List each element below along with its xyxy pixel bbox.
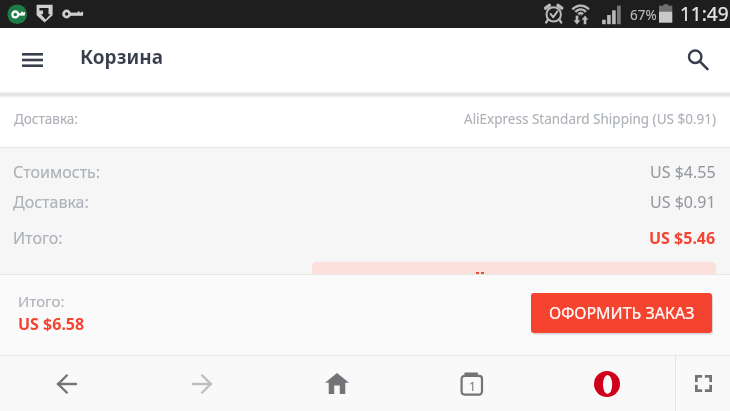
- staticText: Итого:: [18, 291, 65, 311]
- button[interactable]: Tabs: 1 open: [445, 356, 499, 411]
- staticText: Итого:: [13, 227, 63, 249]
- button[interactable]: Opera menu: [580, 356, 634, 411]
- staticText: US $5.46: [649, 227, 716, 249]
- staticText: 67%: [630, 6, 657, 24]
- button[interactable]: Search: [676, 38, 720, 82]
- staticText: AliExpress Standard Shipping (US $0.91): [464, 110, 716, 128]
- button[interactable]: Home: [310, 356, 364, 411]
- staticText: Доставка:: [13, 191, 89, 213]
- staticText: US $0.91: [650, 191, 716, 213]
- button[interactable]: Back: [40, 356, 94, 411]
- staticText: Корзина: [80, 44, 164, 70]
- button[interactable]: Fullscreen: [676, 356, 730, 411]
- staticText: ОФОРМИТЬ ЗАКАЗ: [549, 302, 695, 324]
- staticText: 1: [469, 378, 476, 394]
- staticText: 11:49: [680, 1, 729, 27]
- button[interactable]: Forward: [175, 356, 229, 411]
- staticText: Доставка:: [14, 110, 78, 128]
- button[interactable]: Open navigation menu: [10, 38, 54, 82]
- staticText: US $4.55: [650, 161, 716, 183]
- staticText: Стоимость:: [13, 161, 100, 183]
- staticText: US $6.58: [18, 313, 85, 335]
- button[interactable]: ОФОРМИТЬ ЗАКАЗ: [531, 293, 712, 333]
